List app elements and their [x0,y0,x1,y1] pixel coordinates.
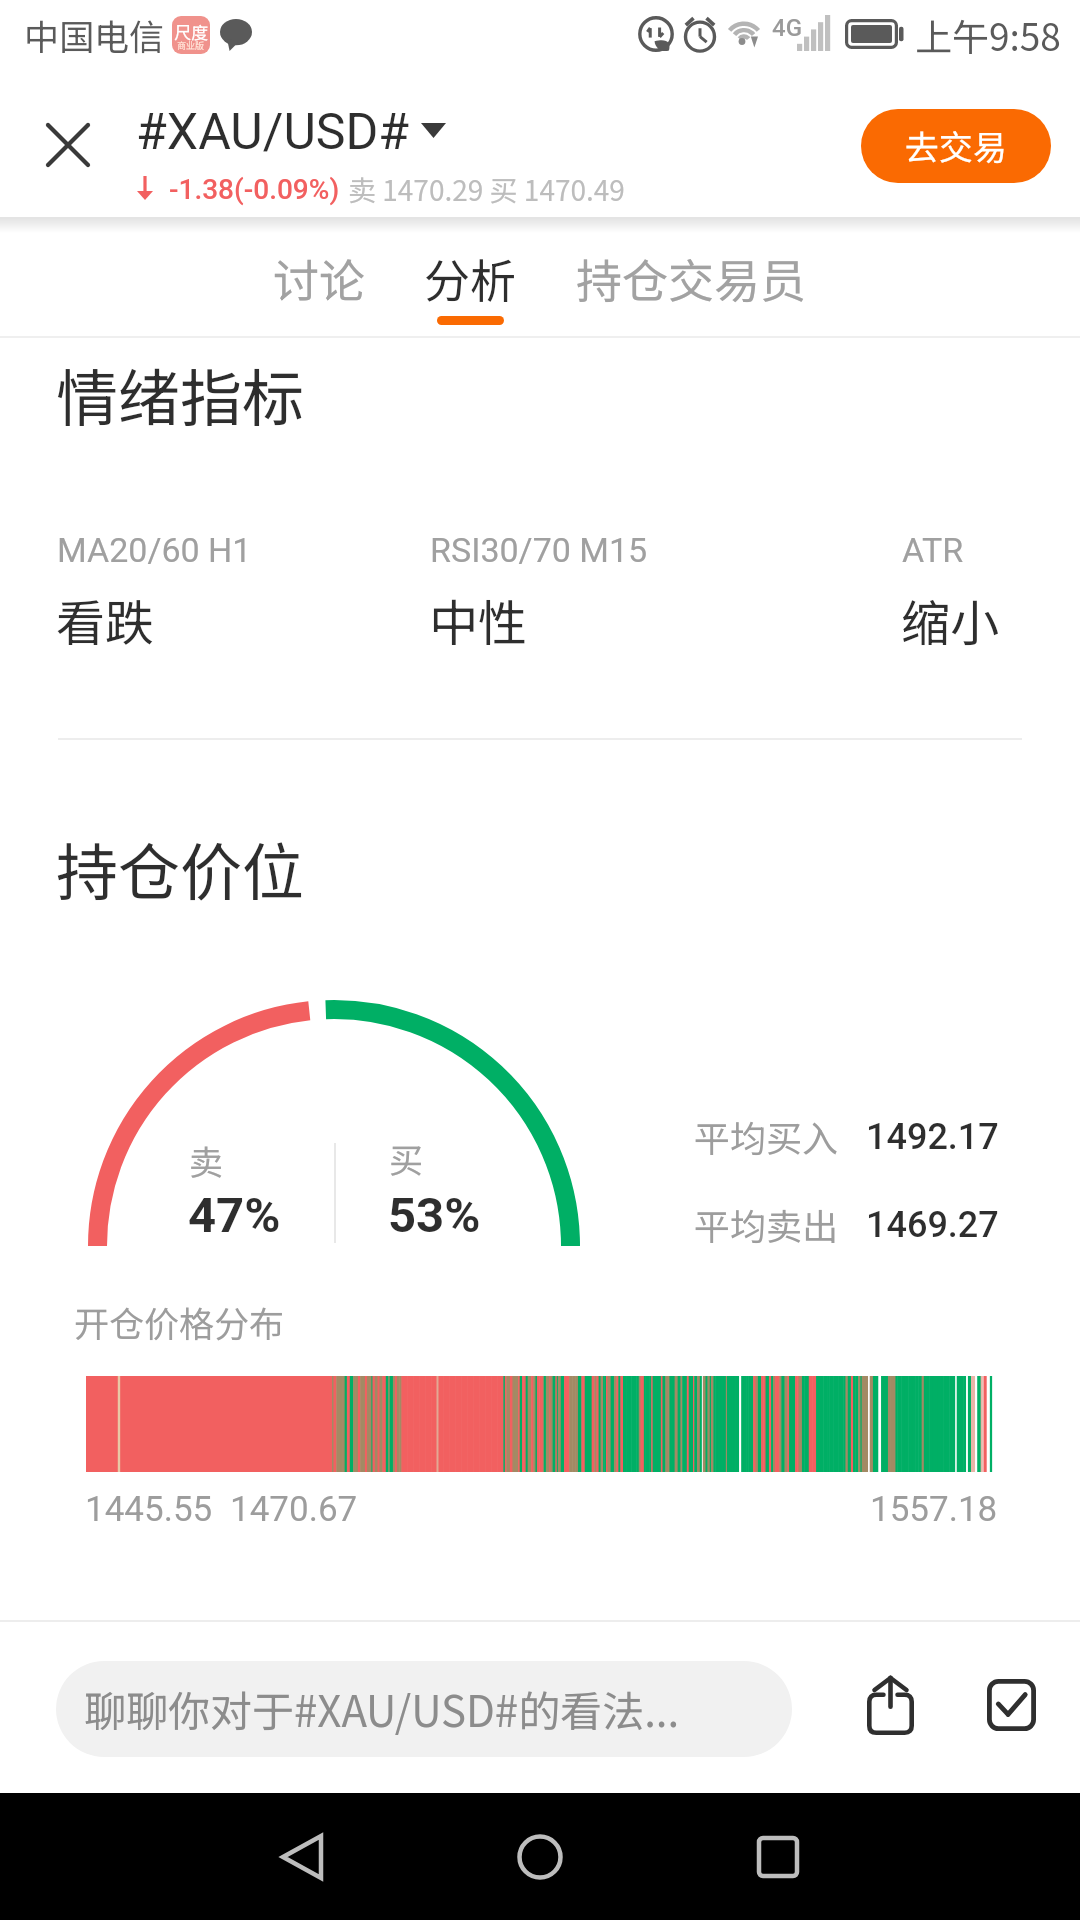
staticText: 4G [772,14,802,42]
staticText: 平均买入 [694,1110,839,1162]
staticText: 聊聊你对于#XAU/USD#的看法... [84,1678,680,1739]
staticText: 尺度 [174,19,208,44]
button[interactable]: 聊聊你对于#XAU/USD#的看法... [56,1661,792,1757]
button[interactable]: 去交易 [861,109,1051,183]
staticText: 商业版 [177,39,205,52]
staticText: RSI30/70 M15 [430,530,648,570]
staticText: 中性 [429,584,528,655]
staticText: 1470.67 [230,1489,358,1530]
button[interactable]: 讨论 [252,220,386,336]
staticText: 缩小 [798,584,999,655]
staticText: 47% [188,1187,281,1244]
staticText: -1.38(-0.09%) [169,173,340,206]
button[interactable]: Share [843,1658,937,1752]
staticText: #XAU/USD# [136,103,410,162]
staticText: 去交易 [905,121,1007,170]
button[interactable]: 分析 [403,220,537,336]
button[interactable]: 持仓交易员 [555,220,827,336]
staticText: 卖 [189,1136,223,1185]
staticText: 看跌 [56,584,155,655]
button[interactable]: Home [504,1821,576,1893]
staticText: 1557.18 [870,1489,998,1530]
button[interactable]: Recents [742,1821,814,1893]
button[interactable]: Close [26,103,110,187]
staticText: 1445.55 [85,1489,213,1530]
button[interactable]: Back [266,1821,338,1893]
staticText: 持仓价位 [56,823,305,913]
staticText: 持仓交易员 [576,245,806,312]
staticText: 开仓价格分布 [74,1296,285,1347]
staticText: MA20/60 H1 [57,530,252,570]
staticText: ATR [902,530,964,570]
staticText: 讨论 [273,245,365,312]
staticText: 情绪指标 [56,349,305,439]
staticText: 1492.17 [866,1116,999,1158]
staticText: 卖 1470.29 买 1470.49 [348,169,625,210]
button[interactable]: Confirm [964,1658,1058,1752]
staticText: 中国电信 [24,9,165,60]
staticText: 买 [389,1134,423,1183]
staticText: 上午9:58 [915,8,1061,62]
staticText: 53% [388,1187,481,1244]
staticText: 1469.27 [866,1204,999,1246]
staticText: 分析 [424,245,516,312]
staticText: 平均卖出 [694,1198,839,1250]
